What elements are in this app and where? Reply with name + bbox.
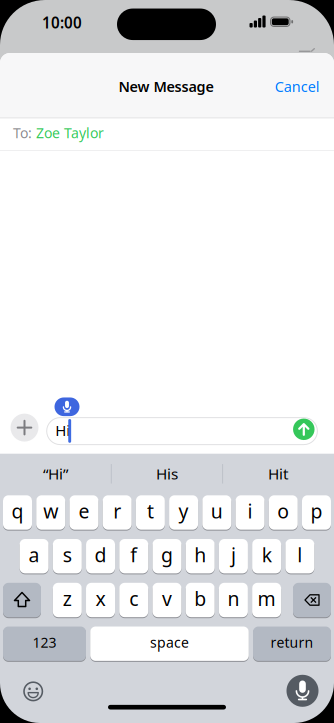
button[interactable] (293, 582, 331, 618)
staticText: o (277, 498, 289, 524)
staticText: b (194, 585, 206, 612)
staticText: Hit (268, 463, 289, 484)
staticText: y (179, 498, 189, 524)
staticText: Zoe Taylor (36, 123, 104, 142)
button[interactable]: v (152, 582, 181, 618)
button[interactable]: r (103, 495, 132, 530)
button[interactable]: n (219, 582, 248, 618)
button[interactable]: t (136, 495, 165, 530)
button[interactable] (54, 397, 79, 416)
staticText: Cancel (275, 76, 320, 96)
staticText: s (63, 541, 72, 568)
button[interactable]: “Hi” (5, 458, 105, 488)
staticText: u (211, 498, 223, 524)
staticText: n (227, 585, 239, 612)
staticText: r (113, 498, 121, 524)
staticText: space (150, 633, 189, 652)
button[interactable] (3, 582, 41, 618)
button[interactable]: l (285, 538, 314, 574)
staticText: 123 (32, 633, 56, 652)
button[interactable]: e (69, 495, 98, 530)
button[interactable]: space (90, 626, 249, 661)
button[interactable]: c (119, 582, 148, 618)
staticText: c (129, 585, 138, 612)
button[interactable]: f (119, 538, 148, 574)
staticText: “Hi” (43, 463, 68, 484)
staticText: q (11, 498, 23, 524)
button[interactable]: To: (13, 117, 334, 149)
button[interactable]: j (219, 538, 248, 574)
staticText: To: (13, 123, 32, 142)
staticText: e (78, 498, 89, 524)
button[interactable]: 123 (3, 626, 86, 661)
button[interactable]: b (186, 582, 215, 618)
staticText: His (156, 463, 178, 484)
button[interactable] (293, 419, 315, 440)
staticText: k (262, 541, 272, 568)
button[interactable]: i (235, 495, 264, 530)
staticText: f (130, 541, 137, 568)
staticText: w (43, 498, 58, 524)
button[interactable]: g (152, 538, 181, 574)
button[interactable]: k (252, 538, 281, 574)
button[interactable]: s (53, 538, 82, 574)
button[interactable]: u (202, 495, 231, 530)
button[interactable]: His (117, 458, 217, 488)
button[interactable]: Hi (46, 417, 318, 445)
staticText: g (161, 541, 173, 568)
button[interactable]: m (252, 582, 281, 618)
staticText: p (310, 498, 322, 524)
button[interactable]: x (86, 582, 115, 618)
button[interactable]: Hit (228, 458, 328, 488)
staticText: New Message (118, 76, 213, 96)
staticText: a (29, 541, 40, 568)
button[interactable] (10, 414, 38, 442)
button[interactable] (21, 679, 45, 703)
button[interactable]: o (269, 495, 298, 530)
button[interactable]: y (169, 495, 198, 530)
button[interactable]: h (186, 538, 215, 574)
button[interactable]: z (53, 582, 82, 618)
staticText: x (95, 585, 105, 612)
staticText: h (194, 541, 206, 568)
button[interactable]: Cancel (265, 71, 329, 101)
staticText: l (297, 541, 302, 568)
staticText: j (231, 541, 236, 568)
button[interactable]: return (253, 626, 331, 661)
staticText: z (63, 585, 72, 612)
staticText: i (247, 498, 252, 524)
staticText: m (258, 585, 276, 612)
staticText: d (94, 541, 106, 568)
staticText: v (162, 585, 172, 612)
staticText: t (147, 498, 154, 524)
button[interactable]: q (3, 495, 32, 530)
button[interactable]: w (36, 495, 65, 530)
staticText: 10:00 (42, 12, 82, 33)
button[interactable]: d (86, 538, 115, 574)
staticText: Hi (55, 420, 70, 440)
button[interactable] (286, 675, 318, 707)
button[interactable]: p (302, 495, 331, 530)
button[interactable]: a (20, 538, 49, 574)
staticText: return (270, 633, 313, 652)
